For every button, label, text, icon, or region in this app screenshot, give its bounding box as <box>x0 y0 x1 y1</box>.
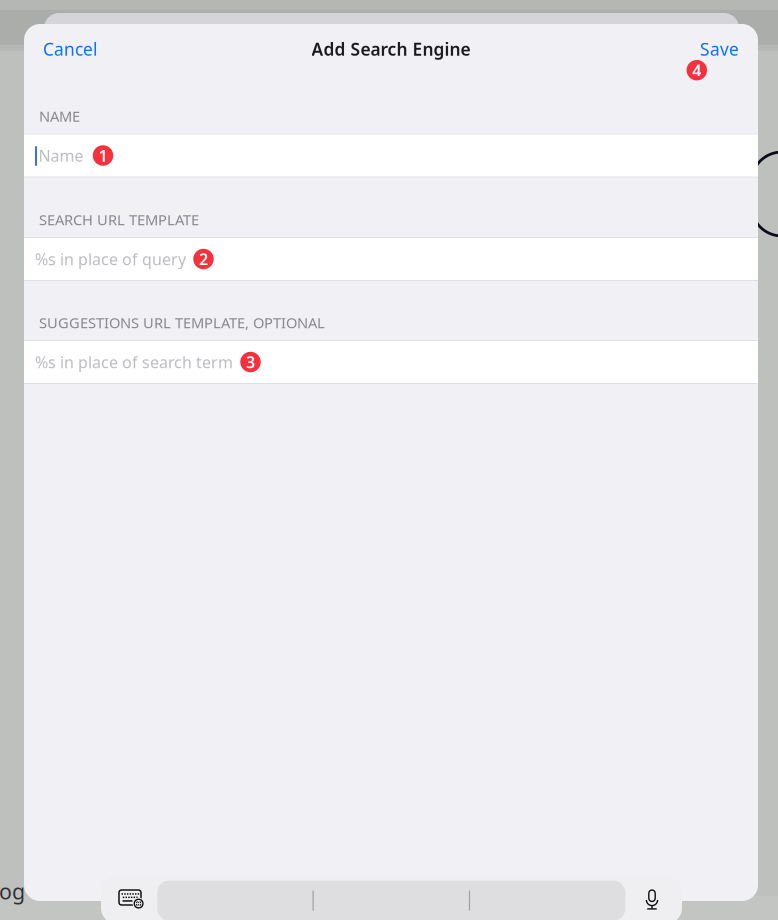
staticText: 2 <box>199 248 208 270</box>
staticText: elog <box>0 877 25 905</box>
button[interactable]: Save <box>697 29 742 69</box>
button[interactable]: %s in place of query <box>24 237 758 281</box>
button[interactable]: Cancel <box>40 29 100 69</box>
staticText: 3 <box>246 351 255 373</box>
staticText: Save <box>700 37 739 60</box>
staticText: 4 <box>692 60 701 81</box>
staticText: %s in place of search term <box>35 351 233 373</box>
staticText: Cancel <box>43 37 97 60</box>
staticText: SEARCH URL TEMPLATE <box>39 210 199 229</box>
staticText: NAME <box>39 106 80 126</box>
staticText: SUGGESTIONS URL TEMPLATE, OPTIONAL <box>39 313 325 332</box>
button[interactable]: Switch keyboard <box>118 888 150 912</box>
staticText: 1 <box>98 145 107 166</box>
staticText: Add Search Engine <box>311 37 470 60</box>
staticText: %s in place of query <box>35 248 186 270</box>
button[interactable]: %s in place of search term <box>24 340 758 384</box>
button[interactable]: Dictation <box>639 889 665 911</box>
button[interactable]: Name <box>24 133 758 177</box>
staticText: Name <box>38 145 83 166</box>
